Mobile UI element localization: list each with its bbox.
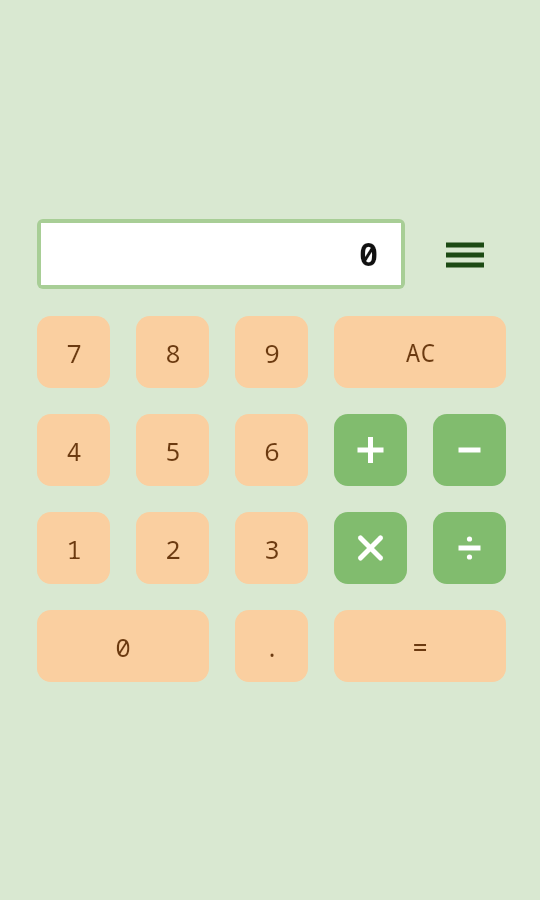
button[interactable]: 2 xyxy=(136,512,209,584)
button[interactable]: Divide xyxy=(433,512,506,584)
staticText: 1 xyxy=(66,531,82,566)
staticText: . xyxy=(264,629,280,664)
staticText: 0 xyxy=(115,629,131,664)
staticText: 0 xyxy=(359,232,379,276)
staticText: = xyxy=(412,629,428,664)
button[interactable]: 9 xyxy=(235,316,308,388)
staticText: 7 xyxy=(66,335,82,370)
staticText: 3 xyxy=(264,531,280,566)
staticText: 6 xyxy=(264,433,280,468)
button[interactable]: 8 xyxy=(136,316,209,388)
staticText: 8 xyxy=(165,335,181,370)
button[interactable]: 6 xyxy=(235,414,308,486)
staticText: 4 xyxy=(66,433,82,468)
button[interactable]: 1 xyxy=(37,512,110,584)
button[interactable]: Multiply xyxy=(334,512,407,584)
button[interactable]: = xyxy=(334,610,506,682)
button[interactable]: . xyxy=(235,610,308,682)
button[interactable]: Menu xyxy=(435,228,495,282)
button[interactable]: 7 xyxy=(37,316,110,388)
staticText: 9 xyxy=(264,335,280,370)
staticText: 5 xyxy=(165,433,181,468)
staticText: 2 xyxy=(165,531,181,566)
button[interactable]: 5 xyxy=(136,414,209,486)
button[interactable]: Minus xyxy=(433,414,506,486)
button[interactable]: Plus xyxy=(334,414,407,486)
button[interactable]: 0 xyxy=(41,223,401,285)
button[interactable]: 0 xyxy=(37,610,209,682)
button[interactable]: 4 xyxy=(37,414,110,486)
button[interactable]: 3 xyxy=(235,512,308,584)
button[interactable]: AC xyxy=(334,316,506,388)
staticText: AC xyxy=(405,335,436,369)
